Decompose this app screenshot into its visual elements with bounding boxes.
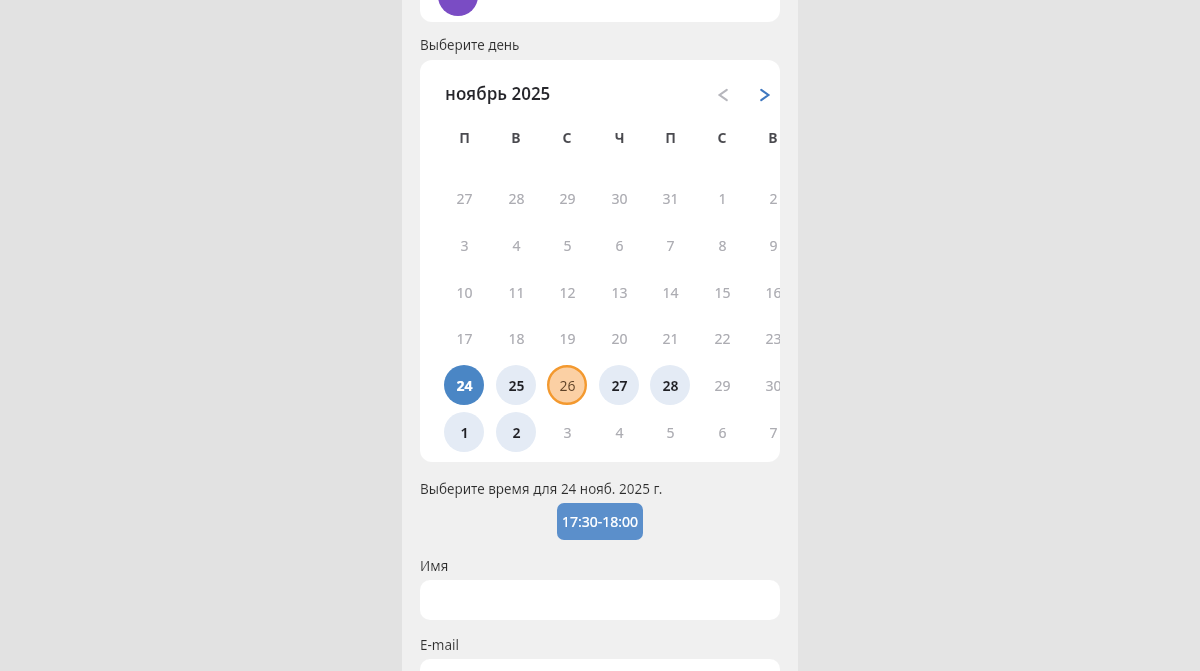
button[interactable]: 28	[496, 178, 536, 218]
button[interactable]: 29	[702, 365, 742, 405]
button[interactable]: 14	[650, 272, 690, 312]
button[interactable]: 27	[599, 365, 639, 405]
staticText: 8	[718, 236, 727, 255]
button[interactable]: 7	[753, 412, 780, 452]
button[interactable]: 5	[547, 225, 587, 265]
staticText: 27	[611, 376, 628, 395]
staticText: 4	[615, 423, 624, 442]
button[interactable]: 15	[702, 272, 742, 312]
button[interactable]: 29	[547, 178, 587, 218]
button[interactable]: 2	[496, 412, 536, 452]
button[interactable]: 30	[599, 178, 639, 218]
button[interactable]: 1	[444, 412, 484, 452]
button[interactable]: 6	[599, 225, 639, 265]
staticText: 26	[559, 376, 576, 395]
button[interactable]: 25	[496, 365, 536, 405]
button[interactable]: 9	[753, 225, 780, 265]
button[interactable]: 20	[599, 318, 639, 358]
staticText: 31	[662, 189, 679, 208]
staticText: 16	[765, 283, 780, 302]
staticText: 11	[508, 283, 525, 302]
staticText: 14	[662, 283, 679, 302]
button[interactable]: Next month	[746, 76, 780, 114]
staticText: 30	[611, 189, 628, 208]
staticText: 13	[611, 283, 628, 302]
staticText: 3	[460, 236, 469, 255]
button[interactable]: 28	[650, 365, 690, 405]
button[interactable]: 7	[650, 225, 690, 265]
button[interactable]: 23	[753, 318, 780, 358]
staticText: В	[511, 128, 521, 147]
button[interactable]: 24	[444, 365, 484, 405]
staticText: В	[768, 128, 778, 147]
staticText: 6	[718, 423, 727, 442]
button[interactable]: 30	[753, 365, 780, 405]
staticText: Выберите день	[420, 36, 520, 54]
button[interactable]: 21	[650, 318, 690, 358]
button[interactable]: 17:30-18:00	[557, 503, 643, 540]
staticText: 30	[765, 376, 780, 395]
staticText: 22	[714, 329, 731, 348]
button[interactable]: 4	[496, 225, 536, 265]
button[interactable]: 17	[444, 318, 484, 358]
button[interactable]: Previous month	[704, 76, 742, 114]
staticText: 2	[512, 423, 521, 442]
staticText: 5	[666, 423, 675, 442]
staticText: С	[562, 128, 572, 147]
button[interactable]: 3	[547, 412, 587, 452]
staticText: 3	[563, 423, 572, 442]
staticText: 12	[559, 283, 576, 302]
staticText: Ч	[614, 128, 625, 147]
staticText: П	[459, 128, 470, 147]
staticText: 9	[769, 236, 778, 255]
staticText: ноябрь 2025	[445, 82, 551, 105]
staticText: 17:30-18:00	[562, 512, 639, 531]
staticText: 21	[662, 329, 679, 348]
button[interactable]: 1	[702, 178, 742, 218]
staticText: 7	[666, 236, 675, 255]
staticText: 29	[714, 376, 731, 395]
staticText: 19	[559, 329, 576, 348]
staticText: 7	[769, 423, 778, 442]
button[interactable]: 18	[496, 318, 536, 358]
staticText: 1	[460, 423, 469, 442]
button[interactable]: 5	[650, 412, 690, 452]
staticText: С	[717, 128, 727, 147]
staticText: 23	[765, 329, 780, 348]
staticText: П	[665, 128, 676, 147]
button[interactable]: 19	[547, 318, 587, 358]
staticText: Выберите время для 24 нояб. 2025 г.	[420, 480, 663, 498]
staticText: 4	[512, 236, 521, 255]
button[interactable]: 11	[496, 272, 536, 312]
button[interactable]: 22	[702, 318, 742, 358]
button[interactable]: 26	[547, 365, 587, 405]
staticText: 28	[662, 376, 679, 395]
staticText: 1	[718, 189, 727, 208]
staticText: E-mail	[420, 636, 460, 654]
staticText: 17	[456, 329, 473, 348]
staticText: 24	[456, 376, 473, 395]
button[interactable]: 3	[444, 225, 484, 265]
staticText: 20	[611, 329, 628, 348]
staticText: 18	[508, 329, 525, 348]
button[interactable]: 2	[753, 178, 780, 218]
button[interactable]: 16	[753, 272, 780, 312]
staticText: 25	[508, 376, 525, 395]
staticText: 5	[563, 236, 572, 255]
button[interactable]: 13	[599, 272, 639, 312]
staticText: Имя	[420, 557, 449, 575]
button[interactable]: 6	[702, 412, 742, 452]
staticText: 10	[456, 283, 473, 302]
staticText: 29	[559, 189, 576, 208]
button[interactable]: 31	[650, 178, 690, 218]
button[interactable]: 8	[702, 225, 742, 265]
button[interactable]: 12	[547, 272, 587, 312]
button[interactable]: 4	[599, 412, 639, 452]
button[interactable]: 27	[444, 178, 484, 218]
staticText: 27	[456, 189, 473, 208]
staticText: 28	[508, 189, 525, 208]
button[interactable]: 10	[444, 272, 484, 312]
staticText: 2	[769, 189, 778, 208]
